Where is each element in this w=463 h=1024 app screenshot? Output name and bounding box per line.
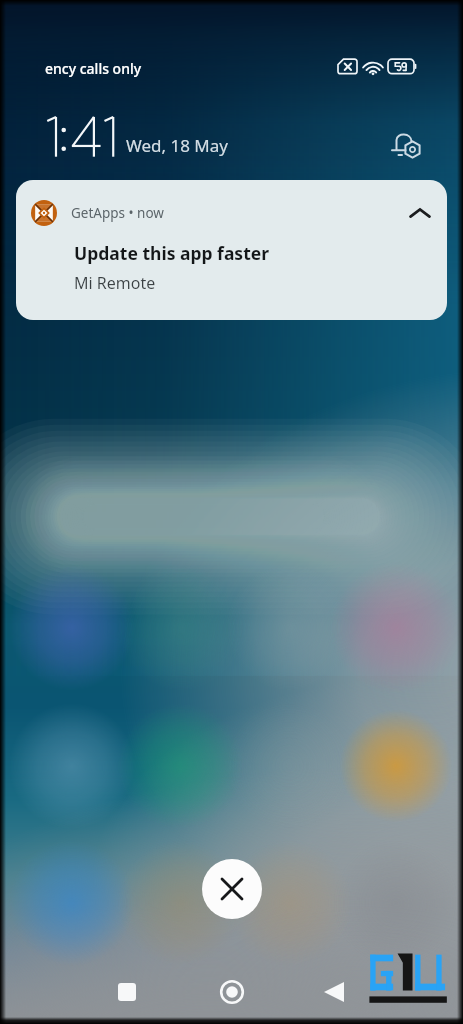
button[interactable]: GetApps • now <box>16 180 447 320</box>
staticText: Mi Remote <box>74 272 156 294</box>
button[interactable]: Close <box>202 859 262 919</box>
button[interactable]: Notification settings <box>385 122 429 166</box>
staticText: GetApps • now <box>71 204 164 222</box>
button[interactable]: Back <box>314 972 354 1012</box>
button[interactable]: Home <box>212 972 252 1012</box>
staticText: Update this app faster <box>74 241 270 265</box>
staticText: Wed, 18 May <box>126 134 228 157</box>
button[interactable]: Recents <box>107 972 147 1012</box>
button[interactable]: Collapse notification <box>405 198 435 228</box>
staticText: ency calls only <box>45 59 142 78</box>
